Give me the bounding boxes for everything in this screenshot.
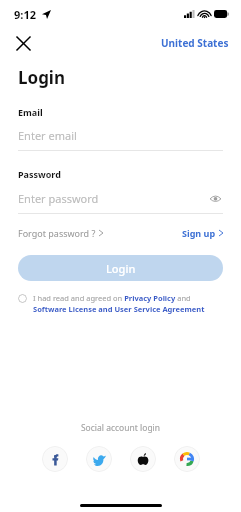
button[interactable]: Sign in with Facebook xyxy=(42,446,68,472)
staticText: Enter password xyxy=(18,191,99,206)
button[interactable]: Enter password xyxy=(18,191,207,206)
button[interactable]: Sign up xyxy=(182,224,223,242)
staticText: Enter email xyxy=(18,128,77,143)
button[interactable]: United States xyxy=(159,33,231,53)
staticText: Password xyxy=(18,168,61,180)
staticText: 9:12 xyxy=(14,7,36,22)
staticText: Login xyxy=(18,66,66,89)
button[interactable]: Enter email xyxy=(18,128,223,151)
staticText: Sign up xyxy=(182,227,216,239)
staticText: Email xyxy=(18,106,43,118)
staticText: I had read and agreed on Privacy Policy … xyxy=(33,293,221,314)
button[interactable]: Sign in with Google xyxy=(174,446,200,472)
staticText: Social account login xyxy=(0,422,241,434)
staticText: Login xyxy=(106,261,136,276)
button[interactable]: Sign in with Twitter xyxy=(86,446,112,472)
button[interactable]: Forgot password ? xyxy=(18,224,103,242)
button[interactable]: I had read and agreed on Privacy Policy … xyxy=(18,293,221,314)
staticText: United States xyxy=(161,36,229,50)
button[interactable]: Sign in with Apple xyxy=(130,446,156,472)
button[interactable]: Close xyxy=(10,30,36,56)
staticText: Forgot password ? xyxy=(18,227,96,239)
button[interactable]: Show password xyxy=(207,190,223,206)
button[interactable]: Login xyxy=(18,255,223,281)
